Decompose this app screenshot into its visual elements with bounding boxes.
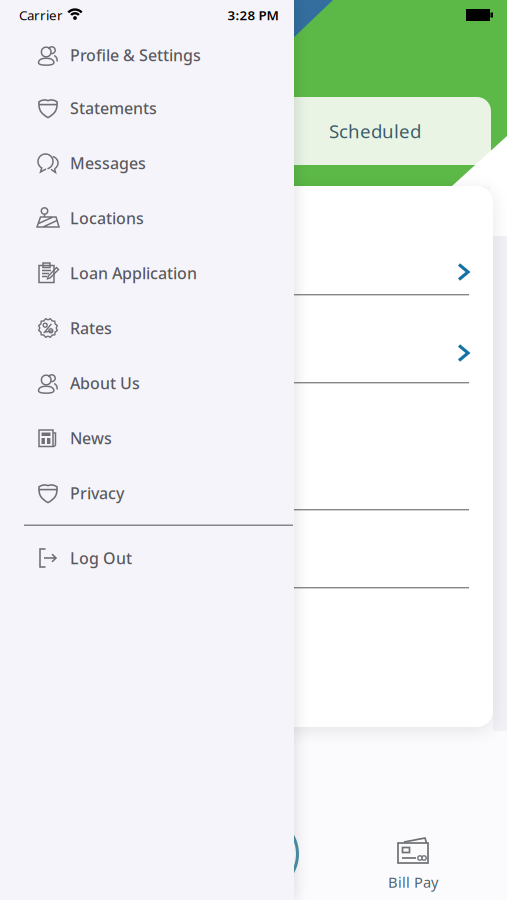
staticText: News <box>70 427 112 449</box>
button[interactable]: Scheduled <box>17 97 491 165</box>
button[interactable]: Rates <box>0 301 294 355</box>
button[interactable]: Scheduled payment 1 <box>14 229 493 294</box>
button[interactable]: Profile & Settings <box>0 28 294 82</box>
staticText: Messages <box>70 152 146 174</box>
button[interactable]: Statements <box>0 81 294 135</box>
staticText: Loan Application <box>70 262 197 284</box>
button[interactable]: Loan Application <box>0 246 294 300</box>
staticText: 3:28 PM <box>227 6 278 24</box>
button[interactable]: Privacy <box>0 466 294 520</box>
staticText: Profile & Settings <box>70 44 201 66</box>
button[interactable]: Log Out <box>0 531 294 585</box>
button[interactable]: About Us <box>0 356 294 410</box>
staticText: Scheduled <box>329 119 421 143</box>
staticText: Statements <box>70 97 157 119</box>
button[interactable]: Messages <box>0 136 294 190</box>
staticText: Bill Pay <box>388 872 438 892</box>
staticText: About Us <box>70 372 140 394</box>
button[interactable]: Bill Pay <box>377 828 449 894</box>
staticText: Privacy <box>70 482 124 504</box>
button[interactable]: Locations <box>0 191 294 245</box>
button[interactable]: Home <box>221 816 297 892</box>
staticText: Locations <box>70 207 144 229</box>
staticText: Rates <box>70 317 112 339</box>
staticText: Log Out <box>70 547 132 569</box>
staticText: Carrier <box>19 6 63 24</box>
button[interactable]: Scheduled payment 2 <box>14 294 493 382</box>
button[interactable]: News <box>0 411 294 465</box>
